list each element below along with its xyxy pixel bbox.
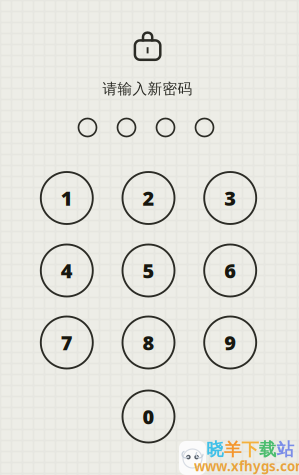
staticText: 9 <box>224 329 236 356</box>
staticText: 4 <box>61 257 73 284</box>
staticText: 羊 <box>224 439 241 460</box>
staticText: 6 <box>224 257 236 284</box>
staticText: 5 <box>142 257 154 284</box>
staticText: 晓 <box>206 439 223 460</box>
staticText: 0 <box>142 403 154 430</box>
button[interactable]: 6 <box>204 244 256 296</box>
staticText: 8 <box>142 329 154 356</box>
staticText: 站 <box>277 439 294 460</box>
staticText: 7 <box>61 329 73 356</box>
button[interactable]: 9 <box>204 316 256 368</box>
button[interactable]: 2 <box>122 172 174 224</box>
staticText: 2 <box>142 185 154 211</box>
staticText: 请输入新密码 <box>103 80 193 98</box>
button[interactable]: 4 <box>41 244 93 296</box>
button[interactable]: 3 <box>204 172 256 224</box>
button[interactable]: 5 <box>122 244 174 296</box>
staticText: 载 <box>259 439 276 460</box>
staticText: 1 <box>61 185 73 211</box>
staticText: www.xfhygs.com <box>194 457 299 475</box>
button[interactable]: 8 <box>122 316 174 368</box>
staticText: 下 <box>241 439 258 460</box>
button[interactable]: 7 <box>41 316 93 368</box>
button[interactable]: 1 <box>41 172 93 224</box>
button[interactable]: 0 <box>122 390 174 442</box>
staticText: 3 <box>224 185 236 211</box>
